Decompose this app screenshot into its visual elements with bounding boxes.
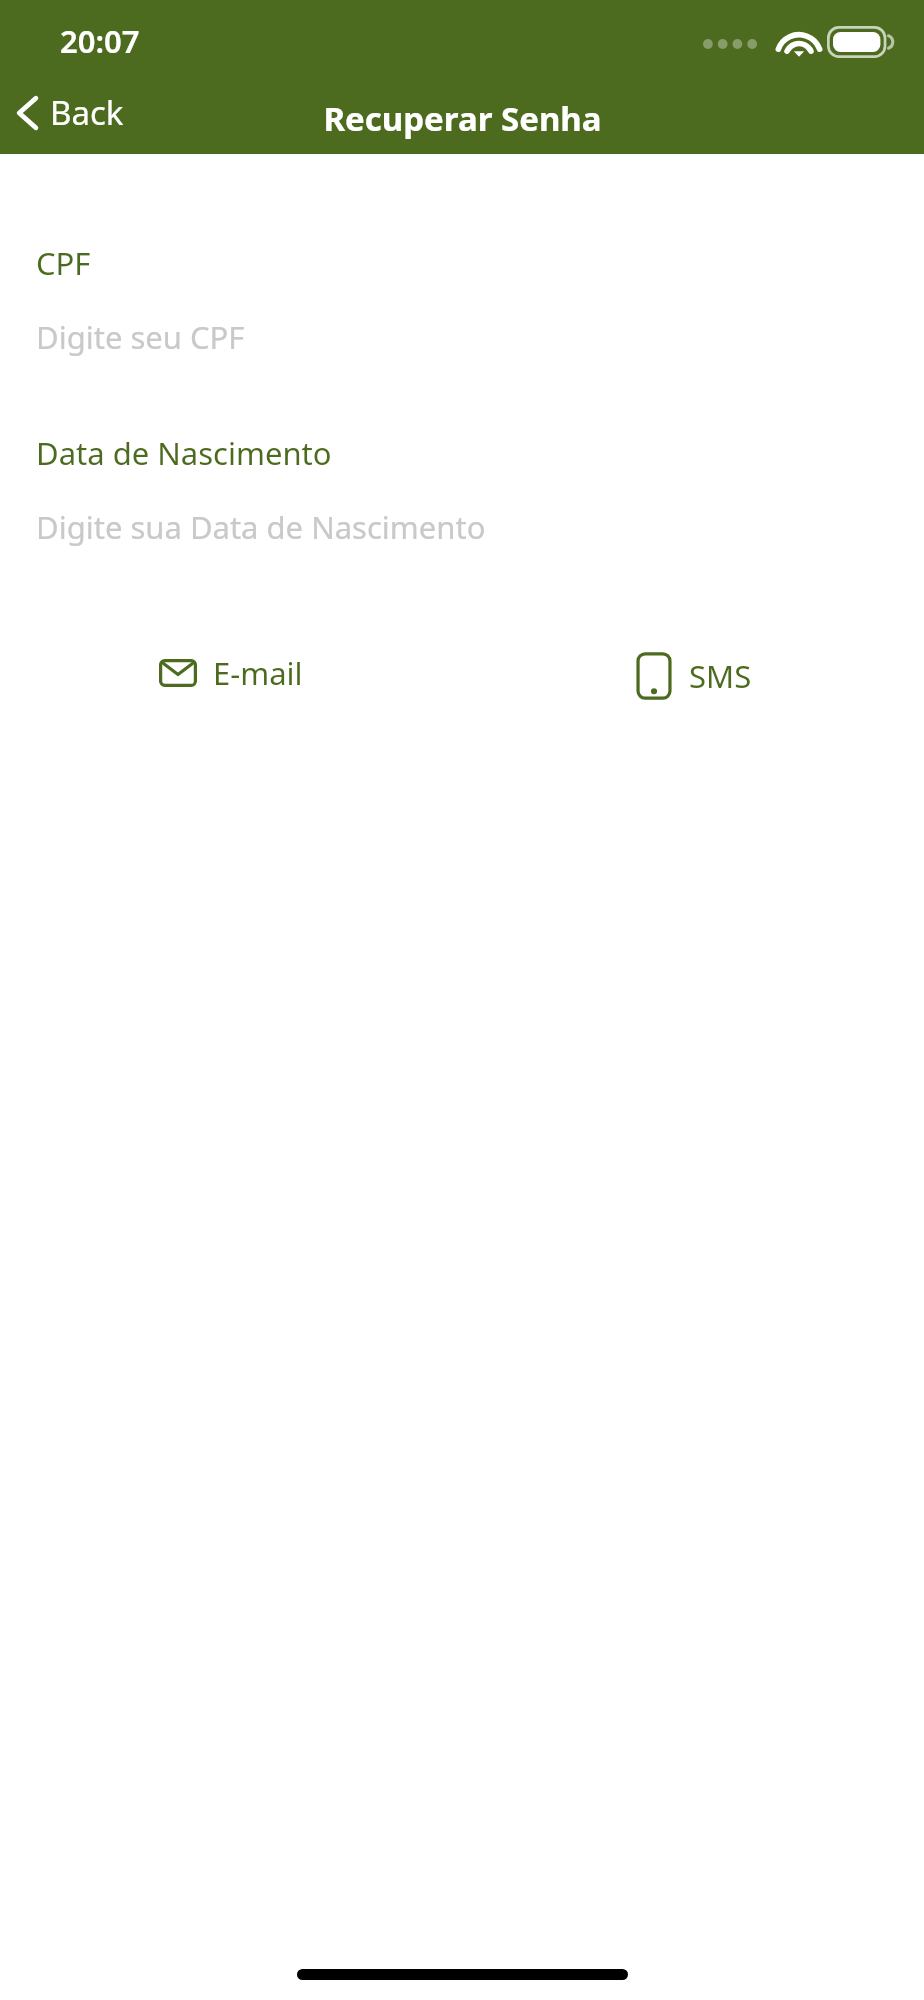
staticText: E-mail (213, 652, 303, 694)
button[interactable]: SMS (625, 644, 762, 708)
staticText: Digite seu CPF (36, 316, 245, 358)
staticText: Digite sua Data de Nascimento (36, 506, 486, 548)
staticText: Recuperar Senha (323, 96, 602, 141)
button[interactable]: Back (6, 84, 132, 141)
button[interactable]: E-mail (149, 644, 313, 702)
button[interactable]: Digite sua Data de Nascimento (0, 502, 924, 552)
button[interactable]: Digite seu CPF (0, 312, 924, 362)
staticText: SMS (689, 655, 752, 697)
staticText: CPF (36, 242, 91, 284)
staticText: Data de Nascimento (36, 432, 332, 474)
staticText: 20:07 (60, 20, 140, 62)
staticText: Back (50, 90, 124, 135)
